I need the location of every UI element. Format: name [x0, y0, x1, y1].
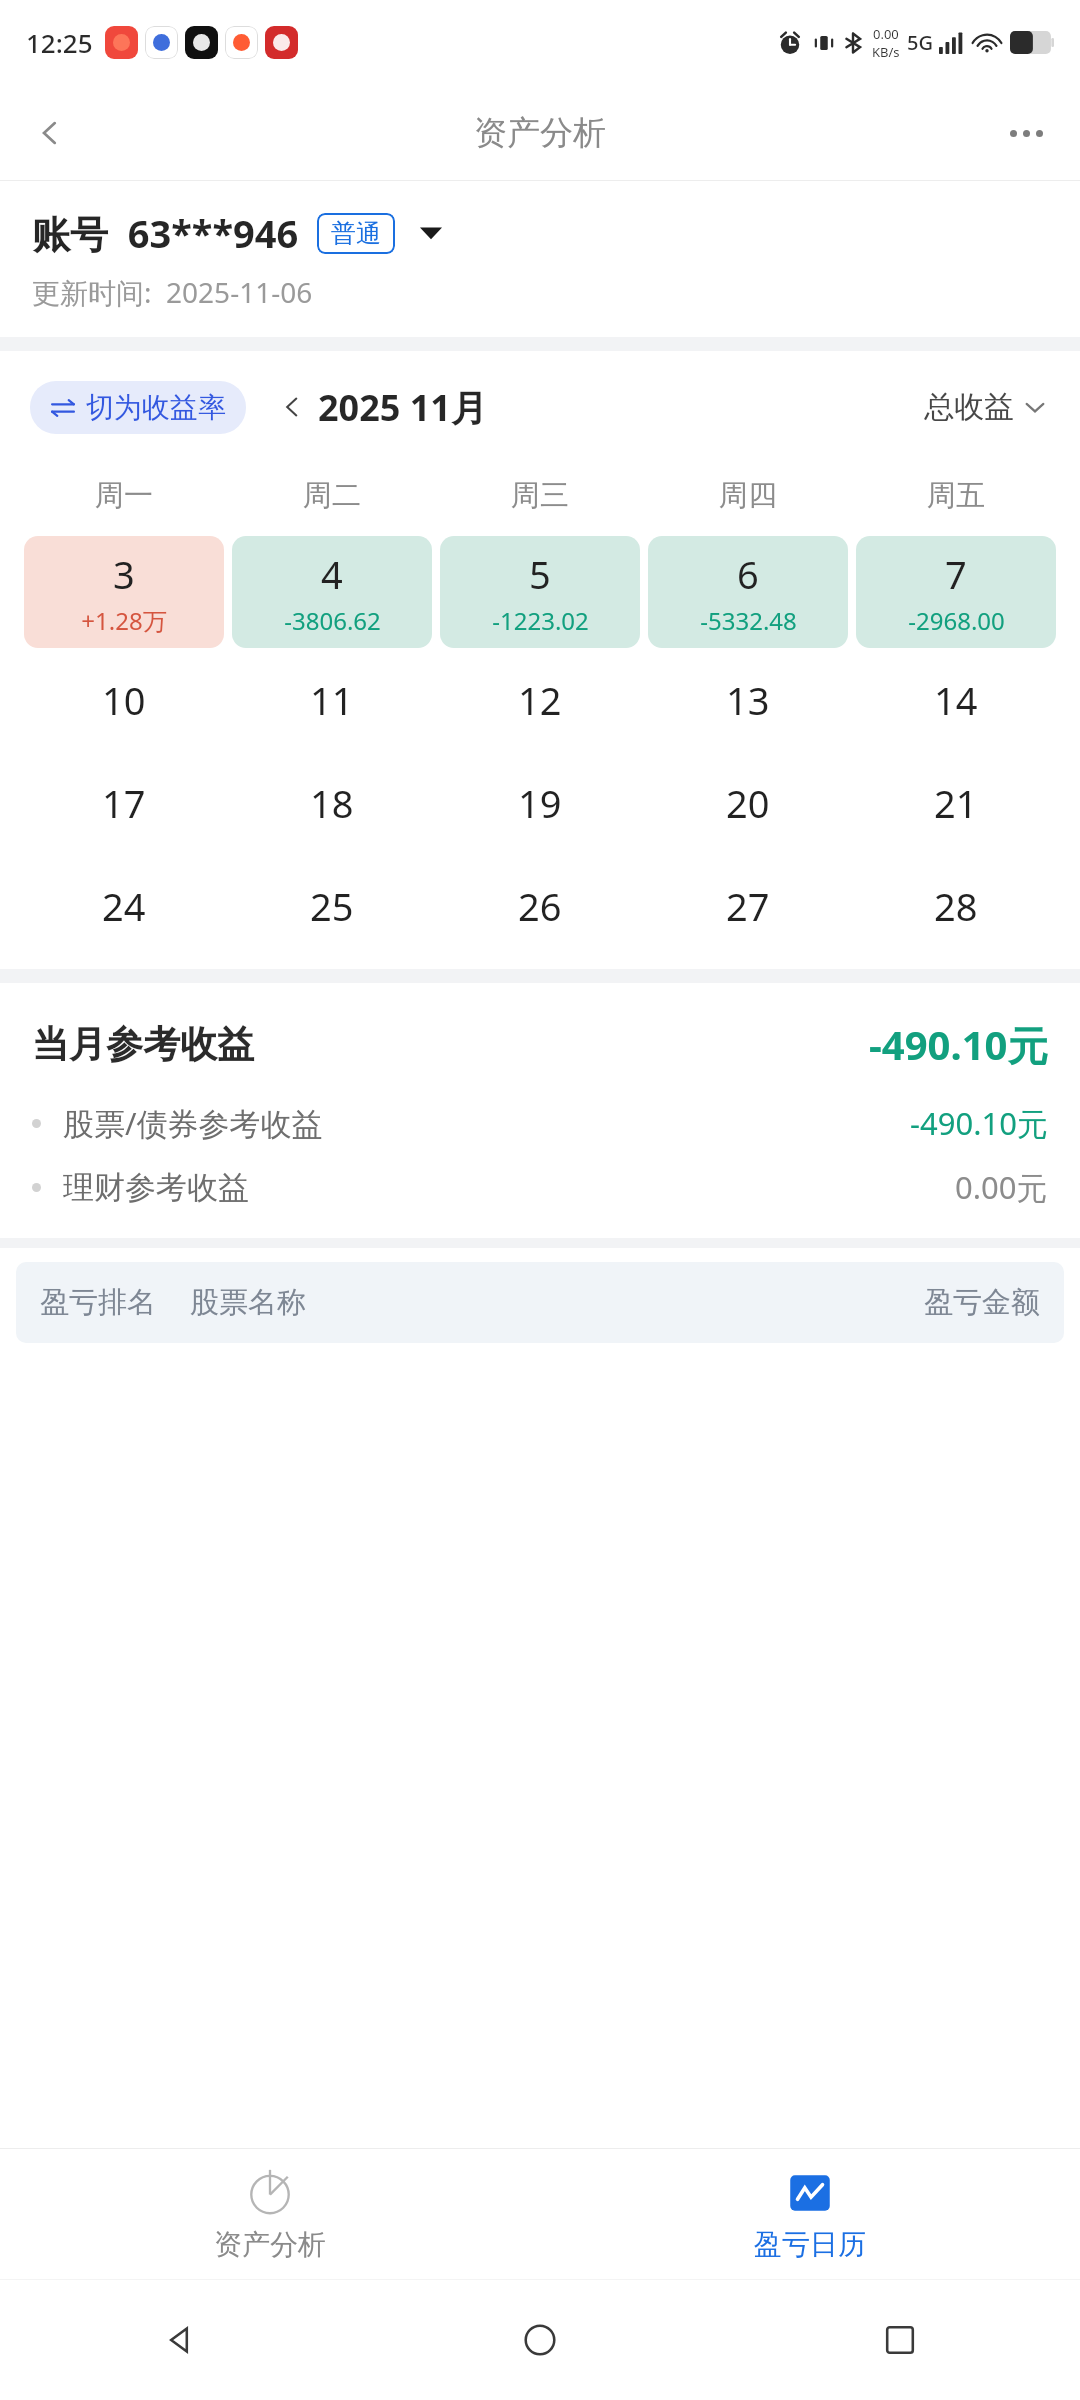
button[interactable]: 上一月: [272, 387, 312, 427]
staticText: 切为收益率: [86, 390, 226, 425]
staticText: 19: [518, 777, 562, 829]
staticText: 14: [934, 674, 978, 726]
staticText: 4: [321, 548, 343, 600]
button[interactable]: 主屏幕: [360, 2280, 720, 2400]
staticText: 27: [726, 880, 770, 932]
button[interactable]: 3: [24, 536, 224, 648]
button[interactable]: 6: [648, 536, 848, 648]
button[interactable]: 更多: [994, 101, 1058, 165]
button[interactable]: 13: [644, 648, 852, 751]
button[interactable]: 18: [228, 751, 436, 854]
button[interactable]: 25: [228, 854, 436, 957]
staticText: 普通: [331, 218, 381, 249]
staticText: 5G: [907, 29, 933, 56]
staticText: 26: [518, 880, 562, 932]
button[interactable]: 10: [20, 648, 228, 751]
button[interactable]: 盈亏日历: [540, 2149, 1080, 2279]
staticText: 股票/债券参考收益: [63, 1102, 323, 1144]
staticText: 0.00: [873, 25, 899, 43]
staticText: 17: [102, 777, 146, 829]
button[interactable]: 返回: [18, 101, 82, 165]
button[interactable]: 26: [436, 854, 644, 957]
staticText: 28: [934, 880, 978, 932]
staticText: -3806.62: [284, 604, 381, 637]
button[interactable]: 总收益: [920, 384, 1050, 430]
staticText: 7: [945, 548, 967, 600]
staticText: 账号 63***946: [32, 207, 299, 259]
button[interactable]: 资产分析: [0, 2149, 540, 2279]
button[interactable]: 27: [644, 854, 852, 957]
button[interactable]: 切换账号: [411, 213, 451, 253]
staticText: 0.00元: [955, 1166, 1048, 1208]
staticText: 12:25: [26, 25, 93, 60]
button[interactable]: 20: [644, 751, 852, 854]
staticText: 10: [102, 674, 146, 726]
staticText: 当月参考收益: [32, 1021, 254, 1068]
button[interactable]: 12: [436, 648, 644, 751]
staticText: -490.10元: [869, 1017, 1048, 1072]
staticText: 21: [934, 777, 978, 829]
staticText: 理财参考收益: [63, 1168, 249, 1207]
staticText: 周五: [927, 477, 985, 514]
staticText: 24: [102, 880, 146, 932]
button[interactable]: 切为收益率: [30, 381, 246, 434]
staticText: -1223.02: [492, 604, 589, 637]
button[interactable]: 24: [20, 854, 228, 957]
button[interactable]: 14: [852, 648, 1060, 751]
button[interactable]: 19: [436, 751, 644, 854]
button[interactable]: 21: [852, 751, 1060, 854]
staticText: +1.28万: [81, 604, 167, 637]
button[interactable]: 28: [852, 854, 1060, 957]
button[interactable]: 11: [228, 648, 436, 751]
staticText: 5: [529, 548, 551, 600]
staticText: 12: [518, 674, 562, 726]
staticText: 6: [737, 548, 759, 600]
staticText: 周四: [719, 477, 777, 514]
staticText: 周一: [95, 477, 153, 514]
staticText: 资产分析: [214, 2227, 326, 2262]
staticText: 2025 11月: [318, 383, 487, 432]
button[interactable]: 7: [856, 536, 1056, 648]
staticText: 总收益: [924, 388, 1014, 426]
button[interactable]: 4: [232, 536, 432, 648]
staticText: 盈亏日历: [754, 2227, 866, 2262]
button[interactable]: 返回: [0, 2280, 360, 2400]
staticText: 11: [310, 674, 354, 726]
button[interactable]: 5: [440, 536, 640, 648]
staticText: -490.10元: [910, 1102, 1048, 1144]
staticText: -5332.48: [700, 604, 797, 637]
staticText: 18: [310, 777, 354, 829]
staticText: 13: [726, 674, 770, 726]
staticText: 盈亏排名: [40, 1284, 156, 1321]
staticText: KB/s: [872, 43, 900, 61]
button[interactable]: 普通: [317, 213, 395, 254]
staticText: 3: [113, 548, 135, 600]
button[interactable]: 最近任务: [720, 2280, 1080, 2400]
button[interactable]: 17: [20, 751, 228, 854]
staticText: 周二: [303, 477, 361, 514]
staticText: 盈亏金额: [924, 1284, 1040, 1321]
staticText: 更新时间: 2025-11-06: [32, 273, 313, 311]
staticText: 资产分析: [474, 112, 606, 154]
staticText: 周三: [511, 477, 569, 514]
staticText: -2968.00: [908, 604, 1005, 637]
staticText: 25: [310, 880, 354, 932]
staticText: 20: [726, 777, 770, 829]
staticText: 股票名称: [190, 1284, 306, 1321]
